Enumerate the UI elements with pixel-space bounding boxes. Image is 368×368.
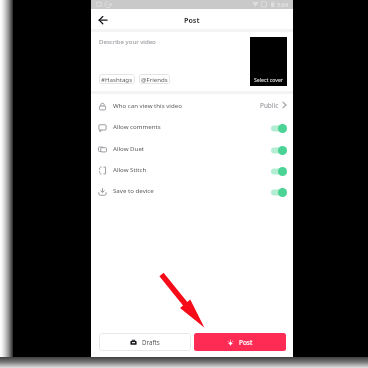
staticText: Describe your video <box>99 37 156 45</box>
staticText: Who can view this video <box>113 101 182 109</box>
staticText: Allow Duet <box>113 144 145 152</box>
button[interactable]: Who can view this video <box>91 94 293 116</box>
staticText: Save to device <box>113 186 154 194</box>
button[interactable]: Save to device <box>91 179 293 201</box>
staticText: Post <box>184 15 200 25</box>
button[interactable]: Back <box>94 11 112 29</box>
staticText: Allow Stitch <box>113 165 147 173</box>
staticText: #Hashtags <box>101 75 133 83</box>
staticText: Post <box>239 338 253 347</box>
staticText: Select cover <box>254 76 283 83</box>
staticText: @Friends <box>141 75 168 83</box>
staticText: 5:04 <box>277 1 289 9</box>
button[interactable]: Drafts <box>99 333 191 351</box>
button[interactable]: Allow Duet <box>91 137 293 159</box>
button[interactable]: Allow Stitch <box>91 158 293 180</box>
button[interactable]: #Hashtags <box>99 74 135 84</box>
button[interactable]: Post <box>194 333 286 351</box>
staticText: Drafts <box>142 338 160 346</box>
button[interactable]: Allow comments <box>91 115 293 137</box>
button[interactable]: @Friends <box>139 74 170 84</box>
button[interactable]: Select cover <box>250 37 287 86</box>
staticText: Allow comments <box>113 122 161 130</box>
staticText: Public <box>260 101 279 110</box>
